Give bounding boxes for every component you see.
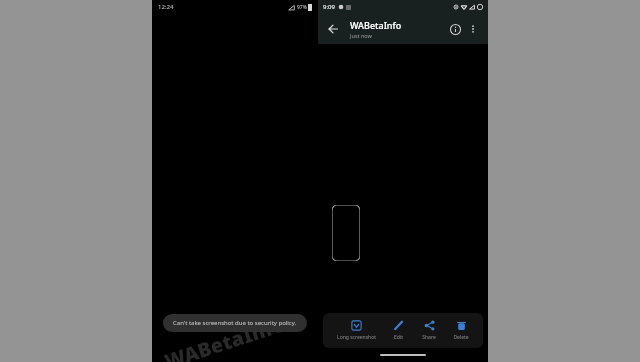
staticText: Just now xyxy=(350,32,372,39)
staticText: Can't take screenshot due to security po… xyxy=(173,319,297,327)
staticText: Edit xyxy=(394,334,403,341)
button[interactable]: Edit xyxy=(389,318,408,343)
staticText: 9:09 xyxy=(323,3,335,11)
staticText: 12:24 xyxy=(158,3,174,11)
button[interactable]: Back xyxy=(324,20,342,38)
button[interactable]: Details xyxy=(446,20,464,38)
button[interactable]: More options xyxy=(464,20,482,38)
button[interactable]: Long screenshot xyxy=(333,318,380,343)
button[interactable]: Share xyxy=(418,318,440,343)
staticText: 97% xyxy=(297,4,307,11)
button[interactable]: Delete xyxy=(449,318,473,343)
staticText: Long screenshot xyxy=(337,334,376,341)
staticText: Delete xyxy=(453,334,469,341)
staticText: WABetaInfo xyxy=(161,310,289,362)
staticText: Share xyxy=(422,334,436,341)
staticText: WABetaInfo xyxy=(350,19,402,31)
